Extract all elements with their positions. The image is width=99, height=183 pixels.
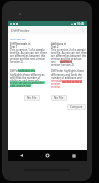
staticText: one bbox=[51, 60, 56, 64]
staticText: This is version 2 of a sample bbox=[51, 48, 86, 52]
staticText: highlights those differences bbox=[10, 73, 45, 77]
staticText: 10:45 bbox=[77, 22, 85, 26]
staticText: DiffFinder bbox=[11, 28, 30, 33]
staticText: Text 1 bbox=[10, 45, 18, 49]
staticText: text file. As you can see, there bbox=[51, 51, 88, 55]
staticText: No File bbox=[27, 96, 37, 100]
staticText: This is version 1 of a sample bbox=[10, 48, 45, 52]
staticText: version (version 2). bbox=[51, 63, 75, 67]
button[interactable]: Recent apps bbox=[70, 152, 77, 159]
staticText: version and the next version bbox=[10, 57, 46, 61]
staticText: version and the previous bbox=[51, 57, 82, 61]
staticText: additions and removals bbox=[10, 79, 39, 83]
staticText: (version 2). bbox=[10, 60, 24, 64]
staticText: differences and finds the bbox=[51, 73, 82, 77]
staticText: Additions in bbox=[51, 42, 67, 46]
button[interactable]: No File bbox=[24, 95, 40, 101]
staticText: version. bbox=[51, 82, 61, 86]
staticText: next version (version 2). bbox=[10, 84, 31, 87]
staticText: number of additions and bbox=[51, 76, 82, 80]
staticText: removals bbox=[51, 79, 63, 83]
staticText: are differences between this bbox=[10, 54, 46, 58]
staticText: and finds the number of bbox=[10, 76, 41, 80]
staticText: Final Text File bbox=[10, 37, 26, 40]
staticText: Text 2 bbox=[51, 45, 59, 49]
staticText: version. bbox=[51, 85, 61, 89]
staticText: No File bbox=[54, 96, 64, 100]
staticText: applied to the old bbox=[62, 80, 82, 83]
button[interactable]: No File bbox=[51, 95, 67, 101]
staticText: to this version to get to the bbox=[10, 81, 44, 84]
button[interactable]: Compare bbox=[67, 104, 86, 110]
button[interactable]: Home bbox=[44, 152, 51, 159]
staticText: DiffFinder highlights those bbox=[51, 69, 85, 73]
button[interactable]: Back bbox=[18, 152, 25, 159]
staticText: Diff Removals in bbox=[10, 42, 31, 46]
staticText: text file. As you can see, there bbox=[10, 51, 47, 55]
staticText: highlights those bbox=[18, 69, 35, 72]
button[interactable]: More options bbox=[79, 26, 87, 34]
staticText: Compare bbox=[70, 105, 83, 109]
staticText: are differences between this bbox=[51, 54, 87, 58]
staticText: and the next bbox=[60, 60, 72, 63]
staticText: DiffFinder bbox=[10, 69, 23, 73]
